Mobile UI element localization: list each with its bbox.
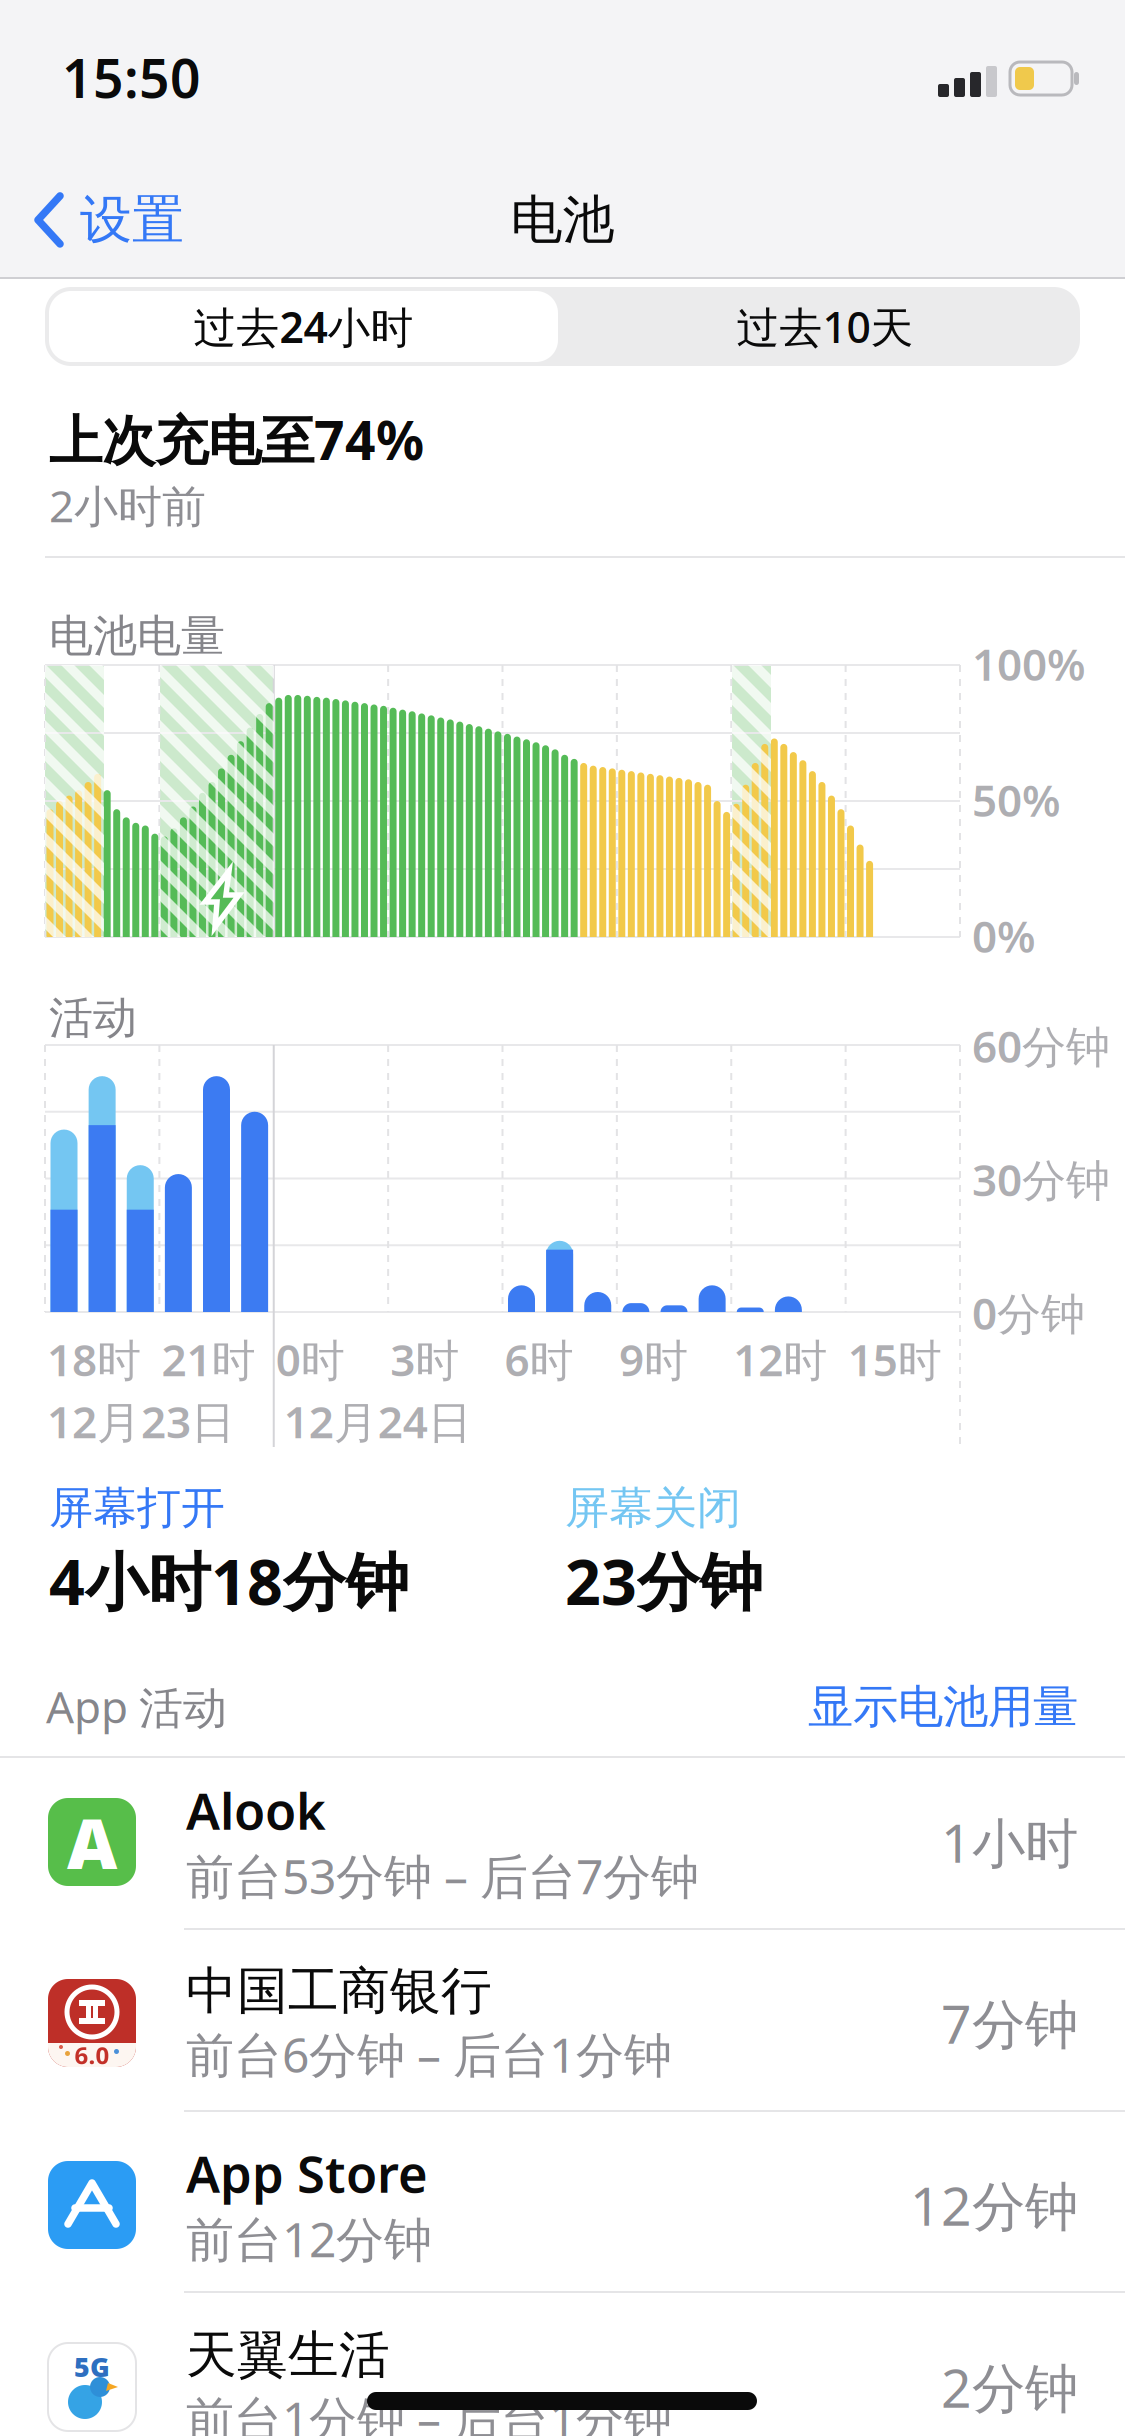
staticText: App Store: [186, 2139, 428, 2207]
staticText: 18时: [47, 1330, 141, 1388]
staticText: 12分钟: [910, 2170, 1078, 2240]
staticText: 前台53分钟 – 后台7分钟: [186, 1844, 699, 1907]
button[interactable]: App Store: [0, 2118, 1125, 2292]
staticText: 1小时: [941, 1807, 1078, 1877]
staticText: 中国工商银行: [186, 1960, 492, 2022]
staticText: 2分钟: [941, 2352, 1078, 2422]
staticText: 屏幕打开: [49, 1481, 225, 1535]
staticText: 12时: [733, 1330, 827, 1388]
staticText: 3时: [390, 1330, 459, 1388]
button[interactable]: 显示电池用量: [808, 1679, 1078, 1735]
staticText: 活动: [49, 991, 137, 1045]
staticText: 0分钟: [972, 1284, 1085, 1342]
staticText: 6.0: [74, 2039, 109, 2071]
button[interactable]: A: [0, 1756, 1125, 1928]
staticText: A: [67, 1796, 117, 1888]
button[interactable]: 5G: [0, 2300, 1125, 2436]
staticText: App 活动: [46, 1677, 227, 1736]
staticText: 0时: [276, 1330, 345, 1388]
staticText: 100%: [972, 635, 1086, 693]
staticText: 前台12分钟: [186, 2207, 432, 2270]
button[interactable]: 6.0: [0, 1936, 1125, 2110]
staticText: 显示电池用量: [808, 1679, 1078, 1735]
button[interactable]: 过去10天: [575, 287, 1075, 366]
staticText: 21时: [161, 1330, 255, 1388]
staticText: 设置: [80, 188, 184, 252]
button[interactable]: 过去24小时: [49, 291, 558, 362]
staticText: 12月24日: [284, 1392, 472, 1450]
staticText: 50%: [972, 771, 1061, 829]
staticText: 前台1分钟 – 后台1分钟: [186, 2386, 672, 2436]
staticText: 15:50: [62, 42, 201, 113]
staticText: 23分钟: [565, 1539, 763, 1622]
staticText: 前台6分钟 – 后台1分钟: [186, 2022, 672, 2086]
staticText: 天翼生活: [186, 2324, 390, 2386]
staticText: 0%: [972, 907, 1036, 965]
staticText: 9时: [619, 1330, 688, 1388]
staticText: 上次充电至74%: [49, 404, 424, 475]
staticText: 5G: [74, 2349, 110, 2384]
staticText: 15时: [848, 1330, 942, 1388]
staticText: 60分钟: [972, 1017, 1110, 1075]
staticText: 7分钟: [941, 1988, 1078, 2058]
staticText: 30分钟: [972, 1150, 1110, 1208]
staticText: 4小时18分钟: [49, 1539, 409, 1622]
staticText: 2小时前: [49, 476, 206, 534]
staticText: 过去10天: [736, 298, 913, 355]
staticText: 电池电量: [49, 609, 225, 663]
staticText: 屏幕关闭: [565, 1481, 741, 1535]
staticText: Alook: [186, 1776, 326, 1844]
staticText: 12月23日: [47, 1392, 235, 1450]
staticText: 电池: [510, 188, 614, 252]
button[interactable]: 设置: [34, 188, 184, 252]
staticText: 6时: [504, 1330, 573, 1388]
staticText: 过去24小时: [193, 298, 413, 355]
